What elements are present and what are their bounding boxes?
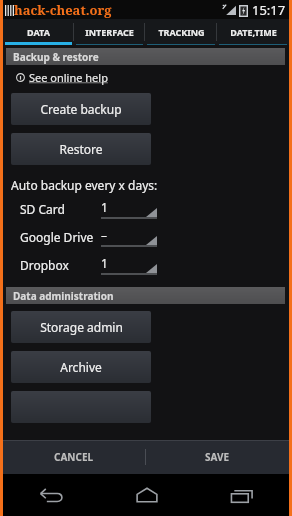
- staticText: –: [101, 227, 108, 243]
- button[interactable]: Storage admin: [11, 311, 151, 343]
- staticText: DATA: [27, 26, 50, 38]
- staticText: SAVE: [205, 450, 230, 464]
- button[interactable]: Create backup: [11, 93, 151, 125]
- button[interactable]: Recent apps: [194, 474, 289, 516]
- staticText: Data administration: [13, 289, 114, 303]
- staticText: 1: [101, 199, 108, 215]
- button[interactable]: Restore: [11, 133, 151, 165]
- button[interactable]: DATE,TIME: [217, 19, 289, 45]
- staticText: See online help: [29, 70, 108, 85]
- button[interactable]: Google Drive interval selector: [101, 227, 157, 247]
- button[interactable]: [11, 391, 151, 423]
- staticText: DATE,TIME: [230, 26, 277, 38]
- staticText: 1: [101, 255, 108, 271]
- staticText: INTERFACE: [85, 26, 134, 38]
- button[interactable]: SD Card interval selector: [101, 199, 157, 219]
- staticText: CANCEL: [54, 450, 94, 464]
- staticText: Archive: [60, 359, 102, 375]
- staticText: SD Card: [20, 201, 65, 217]
- button[interactable]: Home: [99, 474, 194, 516]
- button[interactable]: See online help: [16, 70, 108, 85]
- button[interactable]: Archive: [11, 351, 151, 383]
- button[interactable]: Dropbox interval selector: [101, 255, 157, 275]
- staticText: Restore: [59, 141, 103, 157]
- staticText: hack-cheat.org: [14, 1, 112, 19]
- staticText: Google Drive: [20, 229, 94, 245]
- staticText: Storage admin: [40, 319, 123, 335]
- staticText: Create backup: [40, 101, 122, 117]
- button[interactable]: Back: [3, 474, 99, 516]
- button[interactable]: INTERFACE: [74, 19, 145, 45]
- button[interactable]: SAVE: [146, 440, 289, 474]
- button[interactable]: CANCEL: [3, 440, 145, 474]
- staticText: 15:17: [252, 1, 286, 19]
- staticText: TRACKING: [158, 26, 205, 38]
- staticText: Dropbox: [20, 257, 69, 273]
- button[interactable]: TRACKING: [145, 19, 217, 45]
- staticText: Auto backup every x days:: [11, 177, 158, 193]
- staticText: Backup & restore: [13, 50, 99, 64]
- button[interactable]: DATA: [3, 19, 74, 45]
